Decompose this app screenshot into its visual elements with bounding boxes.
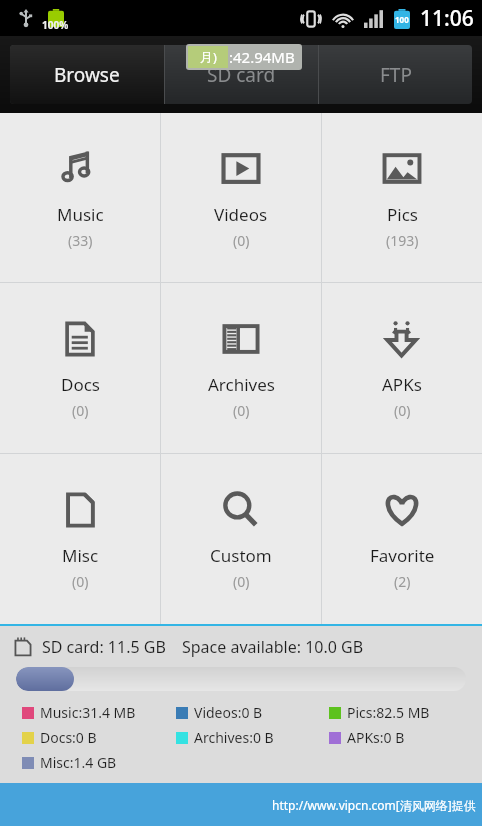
- staticText: Videos: [214, 203, 268, 226]
- staticText: Misc:1.4 GB: [40, 753, 117, 772]
- staticText: Browse: [54, 62, 120, 88]
- button[interactable]: Videos: [161, 113, 321, 282]
- staticText: 100: [395, 14, 409, 25]
- staticText: (0): [233, 231, 250, 250]
- staticText: Custom: [210, 544, 272, 567]
- staticText: (0): [394, 401, 411, 420]
- staticText: (0): [233, 401, 250, 420]
- staticText: Pics:82.5 MB: [347, 703, 430, 722]
- button[interactable]: Archives: [161, 283, 321, 453]
- staticText: (2): [394, 572, 411, 591]
- staticText: Docs:0 B: [40, 728, 97, 747]
- staticText: (0): [72, 572, 89, 591]
- staticText: 100%: [42, 18, 69, 32]
- staticText: (0): [72, 401, 89, 420]
- staticText: Archives: [208, 373, 275, 396]
- staticText: SD card: [207, 62, 276, 88]
- staticText: Archives:0 B: [194, 728, 274, 747]
- staticText: 月): [200, 48, 217, 66]
- button[interactable]: Browse: [10, 45, 164, 104]
- button[interactable]: FTP: [319, 45, 472, 104]
- button[interactable]: APKs: [322, 283, 482, 453]
- staticText: Docs: [61, 373, 100, 396]
- staticText: Pics: [387, 203, 418, 226]
- staticText: 11:06: [420, 4, 474, 33]
- staticText: Favorite: [370, 544, 435, 567]
- staticText: :42.94MB: [229, 47, 295, 67]
- staticText: Videos:0 B: [194, 703, 263, 722]
- button[interactable]: Docs: [0, 283, 160, 453]
- staticText: (193): [386, 231, 419, 250]
- staticText: FTP: [380, 62, 412, 88]
- staticText: Space available: 10.0 GB: [182, 636, 364, 658]
- button[interactable]: Custom: [161, 454, 321, 624]
- staticText: Music: [57, 203, 104, 226]
- staticText: APKs:0 B: [347, 728, 405, 747]
- button[interactable]: Favorite: [322, 454, 482, 624]
- staticText: Music:31.4 MB: [40, 703, 136, 722]
- staticText: SD card: 11.5 GB: [42, 636, 166, 658]
- button[interactable]: Music: [0, 113, 160, 282]
- staticText: (0): [233, 572, 250, 591]
- button[interactable]: Pics: [322, 113, 482, 282]
- staticText: APKs: [382, 373, 422, 396]
- button[interactable]: SD card: [165, 45, 318, 104]
- staticText: Misc: [62, 544, 99, 567]
- button[interactable]: Misc: [0, 454, 160, 624]
- staticText: http://www.vipcn.com[清风网络]提供: [272, 797, 476, 813]
- staticText: (33): [68, 231, 93, 250]
